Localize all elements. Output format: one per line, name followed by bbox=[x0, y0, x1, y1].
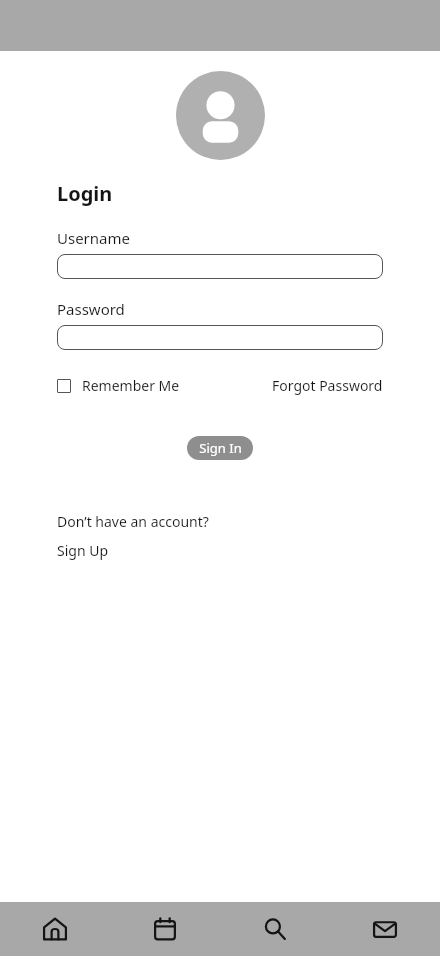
staticText: Don’t have an account? bbox=[57, 512, 209, 531]
staticText: Remember Me bbox=[82, 376, 180, 395]
button[interactable]: Forgot Password bbox=[272, 376, 383, 395]
button[interactable]: Username field bbox=[57, 254, 383, 279]
staticText: Password bbox=[57, 299, 125, 319]
staticText: Sign In bbox=[199, 439, 242, 457]
button[interactable]: Calendar bbox=[110, 902, 220, 956]
button[interactable]: Profile avatar bbox=[176, 71, 265, 160]
button[interactable]: Home bbox=[0, 902, 110, 956]
button[interactable]: Remember Me bbox=[57, 376, 180, 395]
button[interactable]: Mail bbox=[330, 902, 440, 956]
staticText: Username bbox=[57, 228, 130, 248]
button[interactable]: Password field bbox=[57, 325, 383, 350]
button[interactable]: Search bbox=[220, 902, 330, 956]
staticText: Login bbox=[57, 180, 113, 207]
button[interactable]: Sign In bbox=[187, 436, 253, 460]
button[interactable]: Sign Up bbox=[57, 541, 109, 560]
